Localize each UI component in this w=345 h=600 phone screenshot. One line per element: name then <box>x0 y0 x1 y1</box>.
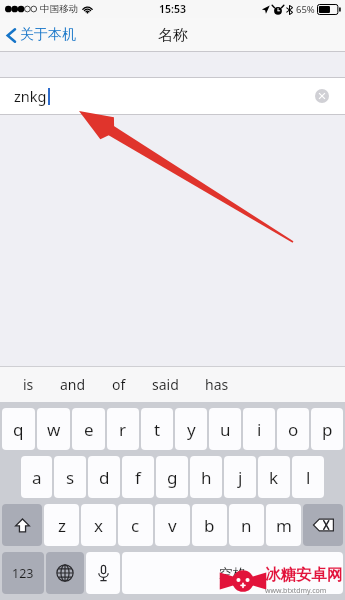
button[interactable]: r <box>107 408 139 450</box>
button[interactable]: g <box>156 456 188 498</box>
staticText: q <box>13 418 24 441</box>
button[interactable]: b <box>192 504 227 546</box>
staticText: is <box>23 375 34 394</box>
button[interactable]: a <box>21 456 52 498</box>
staticText: e <box>84 418 94 441</box>
staticText: u <box>220 418 231 441</box>
staticText: j <box>238 466 243 489</box>
button[interactable]: f <box>122 456 154 498</box>
staticText: p <box>322 418 333 441</box>
staticText: b <box>204 514 215 537</box>
button[interactable]: of <box>99 368 139 401</box>
button[interactable]: k <box>258 456 290 498</box>
staticText: of <box>112 375 126 394</box>
button[interactable]: Shift <box>2 504 42 546</box>
button[interactable]: has <box>192 368 242 401</box>
staticText: h <box>201 466 212 489</box>
staticText: 冰糖安卓网 <box>265 565 343 585</box>
staticText: 中国移动 <box>40 3 78 15</box>
button[interactable]: y <box>175 408 207 450</box>
button[interactable]: x <box>81 504 116 546</box>
button[interactable]: u <box>209 408 241 450</box>
staticText: said <box>152 375 179 394</box>
staticText: a <box>32 466 42 489</box>
button[interactable]: j <box>224 456 256 498</box>
staticText: n <box>241 514 252 537</box>
staticText: 关于本机 <box>20 26 76 44</box>
staticText: x <box>94 514 103 537</box>
staticText: o <box>288 418 299 441</box>
staticText: d <box>99 466 110 489</box>
button[interactable]: m <box>266 504 301 546</box>
staticText: 空格 <box>219 565 246 582</box>
button[interactable]: w <box>37 408 70 450</box>
button[interactable]: Delete <box>303 504 343 546</box>
button[interactable]: n <box>229 504 264 546</box>
button[interactable]: l <box>292 456 324 498</box>
staticText: f <box>135 466 141 489</box>
staticText: and <box>60 375 86 394</box>
button[interactable]: z <box>44 504 79 546</box>
button[interactable]: e <box>72 408 105 450</box>
staticText: 123 <box>12 565 34 582</box>
button[interactable]: h <box>190 456 222 498</box>
staticText: l <box>306 466 311 489</box>
staticText: znkg <box>14 86 47 106</box>
staticText: www.btxtdmy.com <box>265 586 327 596</box>
staticText: k <box>269 466 279 489</box>
staticText: r <box>119 418 127 441</box>
button[interactable]: s <box>54 456 86 498</box>
button[interactable]: i <box>243 408 275 450</box>
button[interactable]: and <box>47 368 99 401</box>
staticText: s <box>66 466 75 489</box>
staticText: t <box>154 418 161 441</box>
button[interactable]: q <box>2 408 35 450</box>
button[interactable]: is <box>10 368 47 401</box>
staticText: 15:53 <box>159 2 186 16</box>
button[interactable]: p <box>311 408 343 450</box>
staticText: 65% <box>296 3 315 16</box>
staticText: m <box>276 514 292 537</box>
staticText: has <box>205 375 229 394</box>
staticText: y <box>187 418 196 441</box>
button[interactable]: o <box>277 408 309 450</box>
button[interactable]: znkg <box>0 77 345 115</box>
button[interactable]: c <box>118 504 153 546</box>
button[interactable]: said <box>139 368 192 401</box>
button[interactable]: 关于本机 <box>0 21 88 49</box>
staticText: 名称 <box>158 26 188 45</box>
button[interactable]: d <box>88 456 120 498</box>
staticText: c <box>131 514 140 537</box>
staticText: v <box>168 514 177 537</box>
staticText: z <box>58 514 66 537</box>
button[interactable]: v <box>155 504 190 546</box>
staticText: g <box>167 466 178 489</box>
button[interactable]: 空格 <box>122 552 343 594</box>
button[interactable]: t <box>141 408 173 450</box>
button[interactable]: Dictation <box>86 552 120 594</box>
staticText: w <box>47 418 61 441</box>
button[interactable]: Switch keyboard <box>46 552 84 594</box>
staticText: i <box>257 418 262 441</box>
button[interactable]: Clear text <box>315 89 329 103</box>
button[interactable]: 123 <box>2 552 44 594</box>
